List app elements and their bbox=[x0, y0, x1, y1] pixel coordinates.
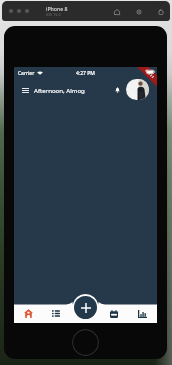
button[interactable]: Home bbox=[14, 304, 42, 323]
staticText: 4:27 PM bbox=[76, 70, 95, 77]
button[interactable]: Add bbox=[74, 296, 97, 319]
button[interactable]: Notifications bbox=[111, 82, 123, 98]
button[interactable]: List bbox=[42, 304, 70, 323]
button[interactable]: Window button bbox=[25, 9, 29, 13]
staticText: iOS 15.0 bbox=[46, 12, 61, 17]
button[interactable]: Window button bbox=[17, 9, 21, 13]
staticText: Carrier bbox=[18, 70, 35, 77]
button[interactable]: Home button bbox=[72, 329, 99, 356]
button[interactable]: Calendar bbox=[99, 304, 128, 323]
staticText: iPhone 8 bbox=[46, 5, 68, 12]
button[interactable]: Rotate bbox=[154, 5, 167, 18]
staticText: Afternoon, Almog bbox=[34, 86, 85, 94]
button[interactable]: Home bbox=[110, 5, 123, 18]
button[interactable]: Screenshot bbox=[132, 5, 145, 18]
button[interactable]: Menu bbox=[20, 81, 31, 99]
button[interactable]: Window button bbox=[9, 9, 13, 13]
button[interactable]: Stats bbox=[128, 304, 157, 323]
button[interactable]: Profile bbox=[126, 79, 149, 100]
